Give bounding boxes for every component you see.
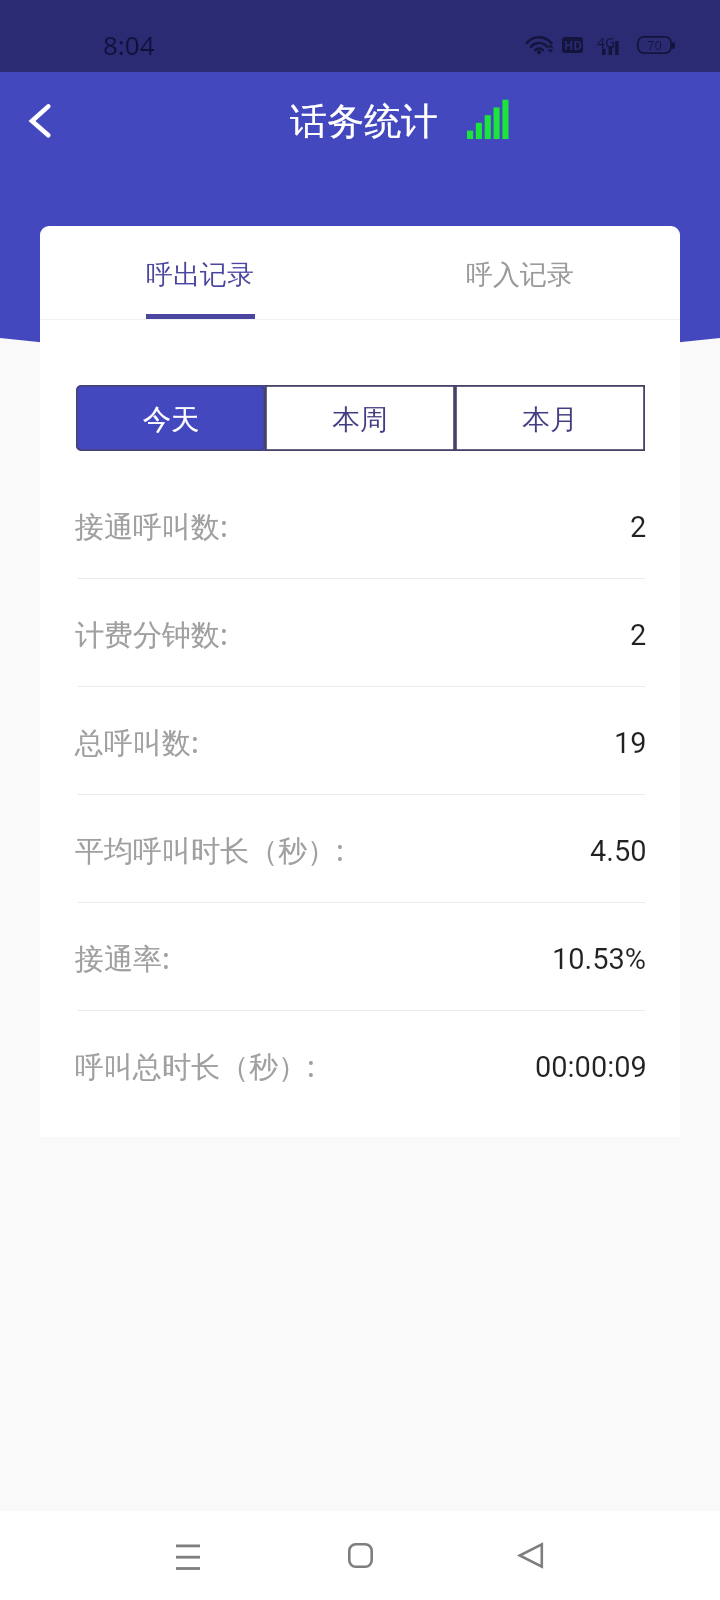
button[interactable]: 平均呼叫时长（秒）:: [40, 795, 680, 902]
button[interactable]: 接通呼叫数:: [40, 471, 680, 578]
button[interactable]: 本月: [455, 385, 645, 451]
staticText: 19: [614, 726, 647, 760]
staticText: 计费分钟数:: [75, 614, 228, 654]
staticText: 总呼叫数:: [75, 722, 199, 762]
staticText: 4G: [597, 33, 616, 52]
staticText: 10.53%: [552, 942, 647, 976]
staticText: 呼出记录: [146, 258, 254, 292]
staticText: 4.50: [590, 834, 647, 868]
button[interactable]: Back: [486, 1511, 576, 1600]
button[interactable]: 呼出记录: [40, 226, 360, 319]
staticText: 呼叫总时长（秒）:: [75, 1046, 315, 1086]
staticText: HD: [564, 37, 582, 53]
button[interactable]: 接通率:: [40, 903, 680, 1010]
staticText: 2: [630, 618, 647, 652]
button[interactable]: 本周: [265, 385, 455, 451]
staticText: 本月: [522, 402, 578, 437]
button[interactable]: 呼叫总时长（秒）:: [40, 1011, 680, 1118]
staticText: 今天: [143, 402, 199, 437]
staticText: 70: [647, 36, 662, 54]
button[interactable]: 计费分钟数:: [40, 579, 680, 686]
button[interactable]: 总呼叫数:: [40, 687, 680, 794]
staticText: 呼入记录: [466, 258, 574, 292]
staticText: 00:00:09: [535, 1050, 647, 1084]
button[interactable]: Recent apps: [143, 1511, 233, 1600]
staticText: 接通呼叫数:: [75, 506, 228, 546]
staticText: 8:04: [103, 27, 155, 62]
button[interactable]: 今天: [76, 385, 265, 451]
staticText: 接通率:: [75, 938, 170, 978]
staticText: 话务统计: [290, 98, 438, 145]
button[interactable]: Back: [3, 85, 75, 157]
staticText: 平均呼叫时长（秒）:: [75, 830, 344, 870]
staticText: 本周: [332, 402, 388, 437]
staticText: 2: [630, 510, 647, 544]
button[interactable]: 呼入记录: [360, 226, 680, 319]
button[interactable]: Home: [315, 1511, 405, 1600]
